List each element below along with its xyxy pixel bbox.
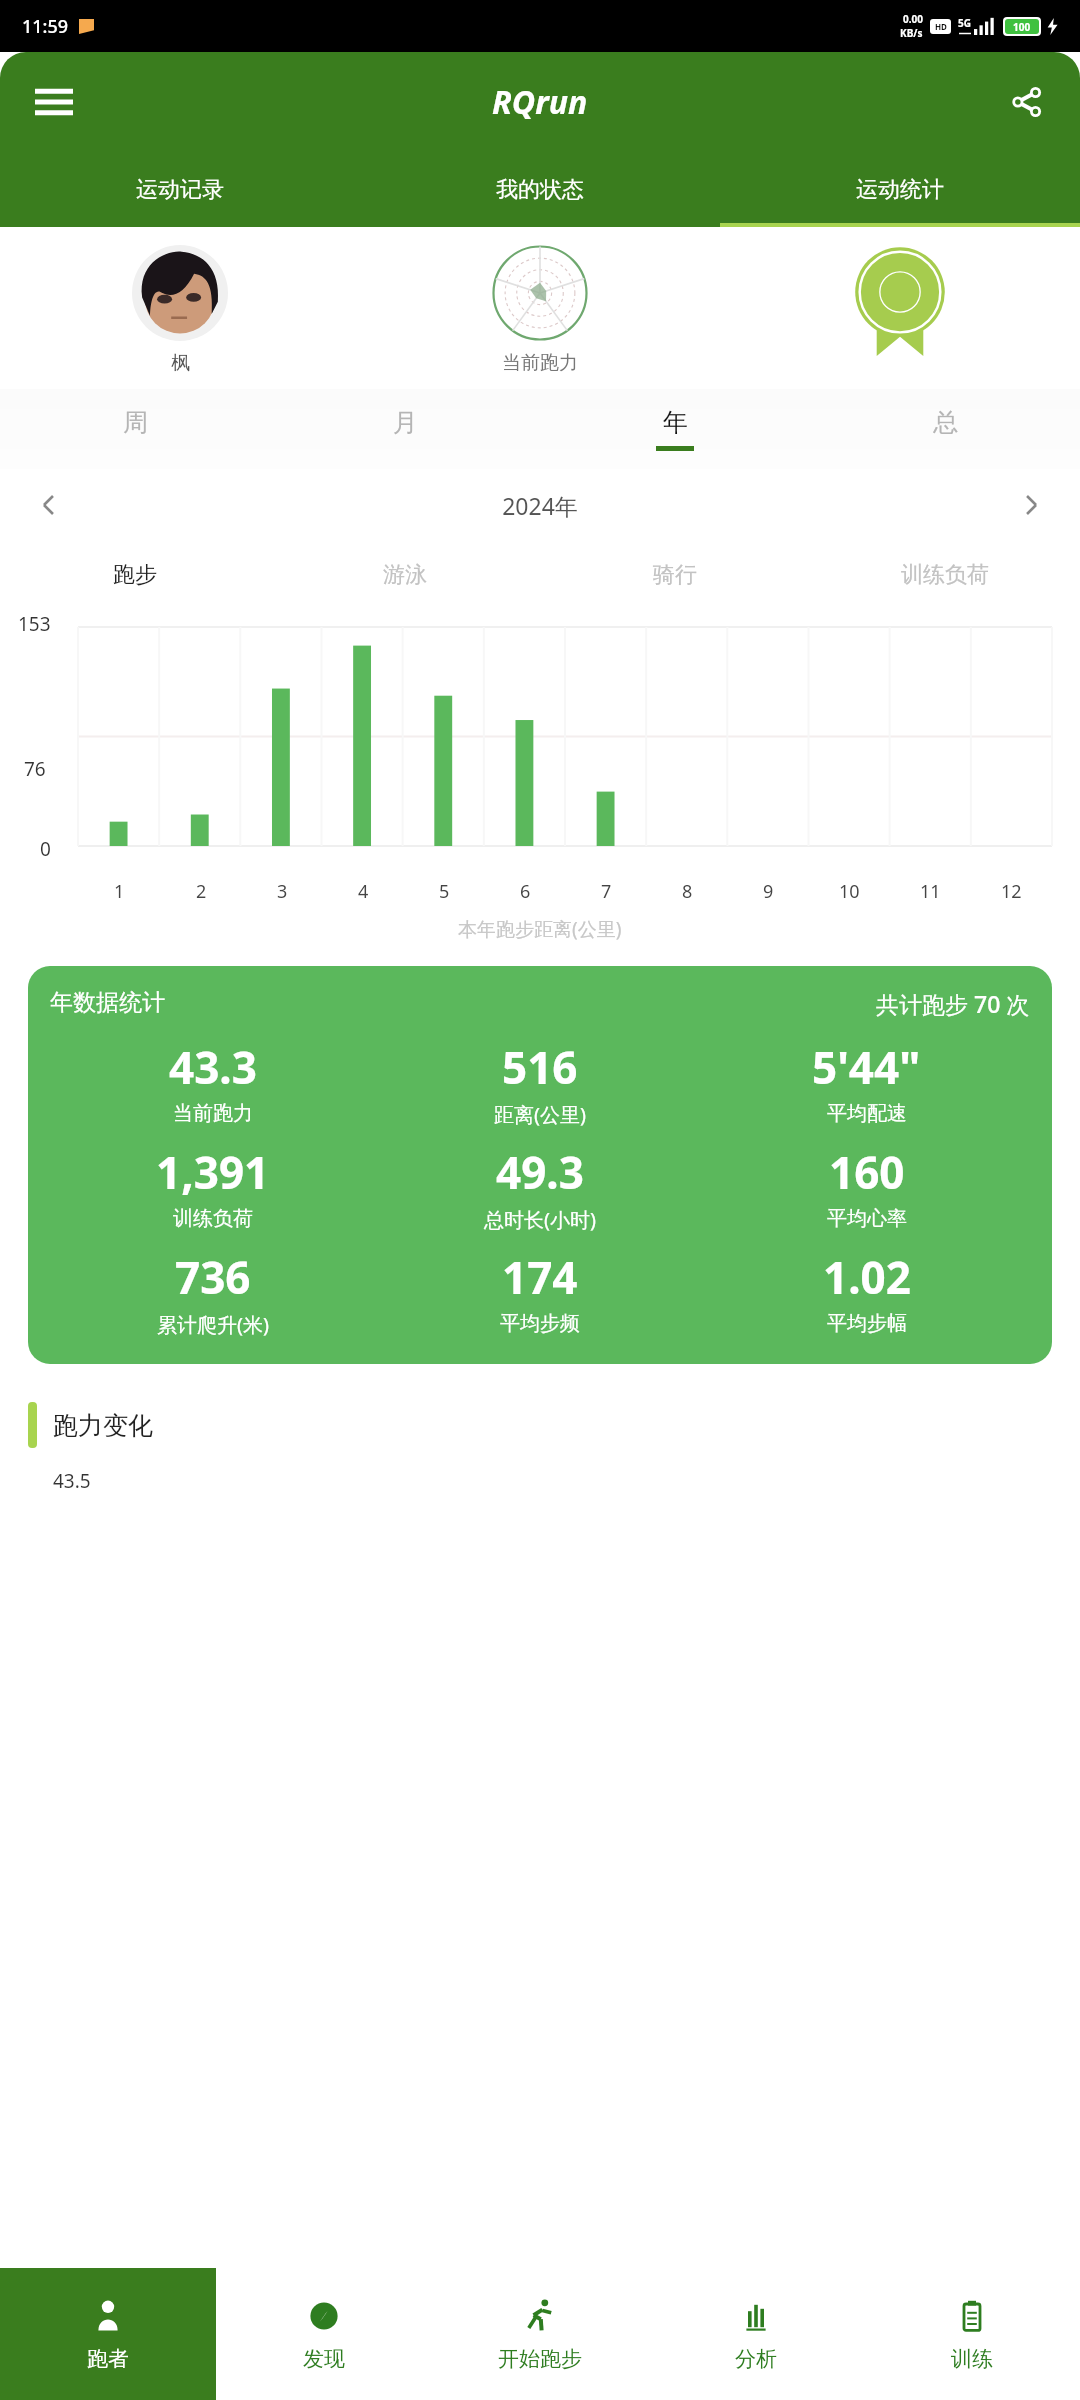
- staticText: 年: [663, 407, 688, 438]
- button[interactable]: 枫: [0, 245, 360, 375]
- button[interactable]: 开始跑步: [432, 2268, 648, 2400]
- button[interactable]: 跑者: [0, 2268, 216, 2400]
- staticText: 平均心率: [827, 1206, 907, 1231]
- staticText: 43.3: [169, 1037, 257, 1097]
- staticText: 6: [520, 879, 531, 904]
- staticText: 2: [196, 879, 207, 904]
- staticText: 2024年: [72, 490, 1008, 521]
- staticText: 516: [502, 1037, 578, 1097]
- staticText: 训练负荷: [173, 1206, 253, 1231]
- staticText: 174: [502, 1247, 578, 1307]
- staticText: 月: [393, 407, 418, 438]
- button[interactable]: 骑行: [540, 541, 810, 609]
- staticText: 分析: [735, 2346, 777, 2372]
- staticText: 8: [682, 879, 693, 904]
- button[interactable]: 游泳: [270, 541, 540, 609]
- staticText: 本年跑步距离(公里): [458, 916, 622, 942]
- button[interactable]: 训练: [864, 2268, 1080, 2400]
- staticText: 年数据统计: [50, 988, 165, 1017]
- button[interactable]: [720, 245, 1080, 357]
- staticText: 9: [763, 879, 774, 904]
- button[interactable]: 年数据统计: [28, 966, 1052, 1364]
- button[interactable]: Menu: [26, 74, 82, 130]
- staticText: 0.00: [903, 12, 923, 26]
- button[interactable]: 跑力变化: [28, 1380, 1052, 1510]
- button[interactable]: Next year: [1008, 482, 1054, 528]
- button[interactable]: 分析: [648, 2268, 864, 2400]
- staticText: 训练: [951, 2346, 993, 2372]
- staticText: 153: [18, 611, 51, 637]
- staticText: 发现: [303, 2346, 345, 2372]
- staticText: 训练负荷: [901, 561, 989, 589]
- staticText: HD: [935, 21, 947, 32]
- staticText: 10: [839, 879, 860, 904]
- button[interactable]: 月: [270, 389, 540, 469]
- button[interactable]: 周: [0, 389, 270, 469]
- staticText: 100: [1013, 20, 1031, 34]
- staticText: 1: [114, 879, 125, 904]
- staticText: 运动记录: [136, 176, 224, 204]
- staticText: 4: [358, 879, 369, 904]
- staticText: 736: [175, 1247, 251, 1307]
- staticText: 跑者: [87, 2346, 129, 2372]
- staticText: 1,391: [156, 1142, 270, 1202]
- staticText: 平均配速: [827, 1101, 907, 1126]
- staticText: 总: [933, 407, 958, 438]
- button[interactable]: 训练负荷: [810, 541, 1080, 609]
- staticText: 49.3: [496, 1142, 584, 1202]
- button[interactable]: 跑步: [0, 541, 270, 609]
- staticText: 我的状态: [496, 176, 584, 204]
- staticText: 1.02: [823, 1247, 911, 1307]
- button[interactable]: 我的状态: [360, 152, 720, 227]
- staticText: 周: [123, 407, 148, 438]
- staticText: 12: [1001, 879, 1022, 904]
- staticText: 5: [439, 879, 450, 904]
- staticText: 当前跑力: [173, 1101, 253, 1126]
- staticText: 游泳: [383, 561, 427, 589]
- staticText: 76: [24, 756, 46, 782]
- staticText: KB/s: [900, 26, 923, 40]
- staticText: RQrun: [492, 80, 588, 124]
- button[interactable]: 当前跑力: [360, 245, 720, 375]
- staticText: 5'44": [812, 1037, 921, 1097]
- staticText: 7: [601, 879, 612, 904]
- button[interactable]: 运动记录: [0, 152, 360, 227]
- button[interactable]: 年: [540, 389, 810, 469]
- staticText: 当前跑力: [502, 351, 578, 375]
- staticText: 累计爬升(米): [157, 1311, 269, 1338]
- button[interactable]: Share: [998, 74, 1054, 130]
- staticText: 共计跑步 70 次: [876, 988, 1030, 1019]
- button[interactable]: Previous year: [26, 482, 72, 528]
- staticText: 距离(公里): [494, 1101, 586, 1128]
- staticText: 160: [829, 1142, 905, 1202]
- staticText: 平均步频: [500, 1311, 580, 1336]
- button[interactable]: 运动统计: [720, 152, 1080, 227]
- staticText: 0: [40, 836, 51, 862]
- staticText: 总时长(小时): [484, 1206, 596, 1233]
- staticText: 跑步: [113, 561, 157, 589]
- staticText: 43.5: [53, 1468, 91, 1494]
- staticText: 5G: [958, 16, 971, 30]
- staticText: 平均步幅: [827, 1311, 907, 1336]
- button[interactable]: 发现: [216, 2268, 432, 2400]
- staticText: 枫: [171, 351, 190, 375]
- staticText: 11: [920, 879, 941, 904]
- staticText: 骑行: [653, 561, 697, 589]
- staticText: 3: [277, 879, 288, 904]
- staticText: 11:59: [22, 14, 69, 39]
- staticText: 跑力变化: [53, 1410, 153, 1441]
- button[interactable]: 总: [810, 389, 1080, 469]
- staticText: 开始跑步: [498, 2346, 582, 2372]
- staticText: 运动统计: [856, 176, 944, 204]
